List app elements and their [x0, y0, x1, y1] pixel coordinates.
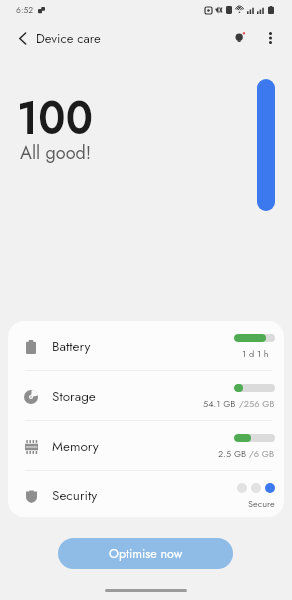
staticText: /256 GB	[239, 397, 275, 410]
staticText: Storage	[52, 387, 96, 407]
button[interactable]: Back	[4, 27, 40, 49]
staticText: 1 d 1 h	[242, 347, 269, 360]
staticText: Secure	[248, 497, 275, 510]
staticText: Memory	[52, 437, 99, 457]
staticText: Battery	[52, 337, 91, 357]
button[interactable]: More options	[255, 27, 285, 49]
staticText: /6 GB	[249, 447, 275, 460]
staticText: Security	[52, 486, 98, 506]
staticText: 2.5 GB	[218, 447, 249, 460]
button[interactable]: Tips	[225, 27, 255, 49]
button[interactable]: Memory	[8, 421, 284, 470]
button[interactable]: Optimise now	[58, 538, 233, 569]
staticText: 6:52	[16, 4, 34, 16]
staticText: Device care	[36, 29, 101, 48]
staticText: Optimise now	[109, 545, 183, 563]
button[interactable]: Storage	[8, 371, 284, 420]
staticText: 100	[17, 84, 94, 152]
staticText: All good!	[20, 140, 92, 166]
button[interactable]: Battery	[8, 321, 284, 370]
staticText: 54.1 GB	[203, 397, 239, 410]
button[interactable]: Security	[8, 471, 284, 517]
